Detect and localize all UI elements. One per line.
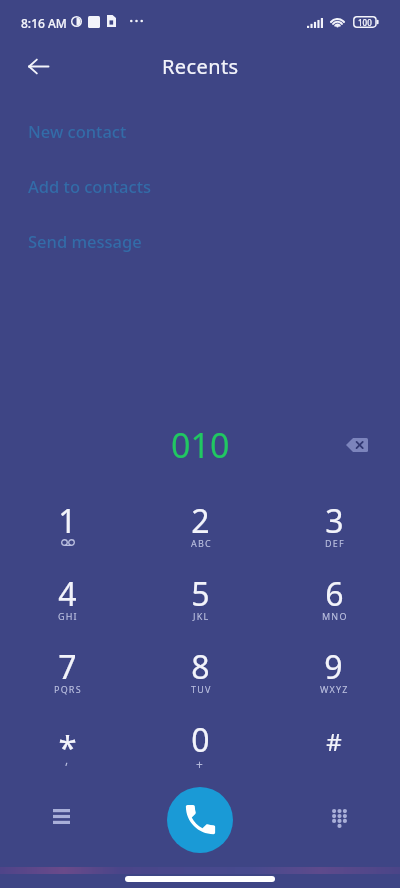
button[interactable]: 0 — [134, 709, 267, 782]
button[interactable]: 1 — [0, 490, 134, 563]
button[interactable]: 5 — [134, 563, 267, 636]
staticText: + — [196, 756, 205, 772]
staticText: Recents — [162, 53, 239, 80]
button[interactable]: 7 — [0, 636, 134, 709]
staticText: 3 — [325, 499, 344, 543]
button[interactable]: 8 — [134, 636, 267, 709]
button[interactable]: Send message — [0, 213, 400, 268]
staticText: Send message — [28, 230, 142, 252]
staticText: New contact — [28, 120, 127, 142]
button[interactable]: 6 — [267, 563, 400, 636]
staticText: PQRS — [54, 683, 82, 695]
staticText: JKL — [193, 610, 210, 622]
button[interactable]: Backspace — [335, 423, 379, 467]
staticText: 6 — [325, 572, 344, 616]
staticText: 7 — [58, 645, 77, 689]
staticText: 9 — [324, 645, 343, 689]
staticText: 2 — [191, 499, 210, 543]
button[interactable]: 3 — [267, 490, 400, 563]
button[interactable]: # — [267, 709, 400, 782]
staticText: WXYZ — [320, 683, 349, 695]
staticText: DEF — [325, 537, 345, 549]
button[interactable]: Dialpad — [317, 796, 361, 840]
staticText: 1 — [58, 499, 77, 543]
staticText: 0 — [191, 718, 210, 762]
staticText: * — [58, 725, 77, 770]
staticText: 8 — [191, 645, 210, 689]
staticText: 5 — [191, 572, 210, 616]
staticText: 8:16 AM — [21, 15, 67, 31]
staticText: , — [65, 751, 70, 767]
staticText: TUV — [191, 683, 212, 695]
button[interactable]: 4 — [0, 563, 134, 636]
button[interactable]: Call history — [39, 794, 83, 838]
staticText: 100 — [358, 17, 372, 28]
staticText: MNO — [322, 610, 348, 622]
button[interactable]: 9 — [267, 636, 400, 709]
button[interactable]: Back — [18, 46, 58, 86]
button[interactable]: New contact — [0, 103, 400, 158]
button[interactable]: Call — [167, 787, 233, 853]
staticText: 4 — [58, 572, 77, 616]
staticText: # — [326, 725, 342, 758]
staticText: ABC — [191, 537, 212, 549]
staticText: Add to contacts — [28, 175, 151, 197]
button[interactable]: * — [0, 709, 134, 782]
button[interactable]: 2 — [134, 490, 267, 563]
staticText: 010 — [171, 422, 230, 468]
button[interactable]: Add to contacts — [0, 158, 400, 213]
staticText: GHI — [58, 610, 78, 622]
